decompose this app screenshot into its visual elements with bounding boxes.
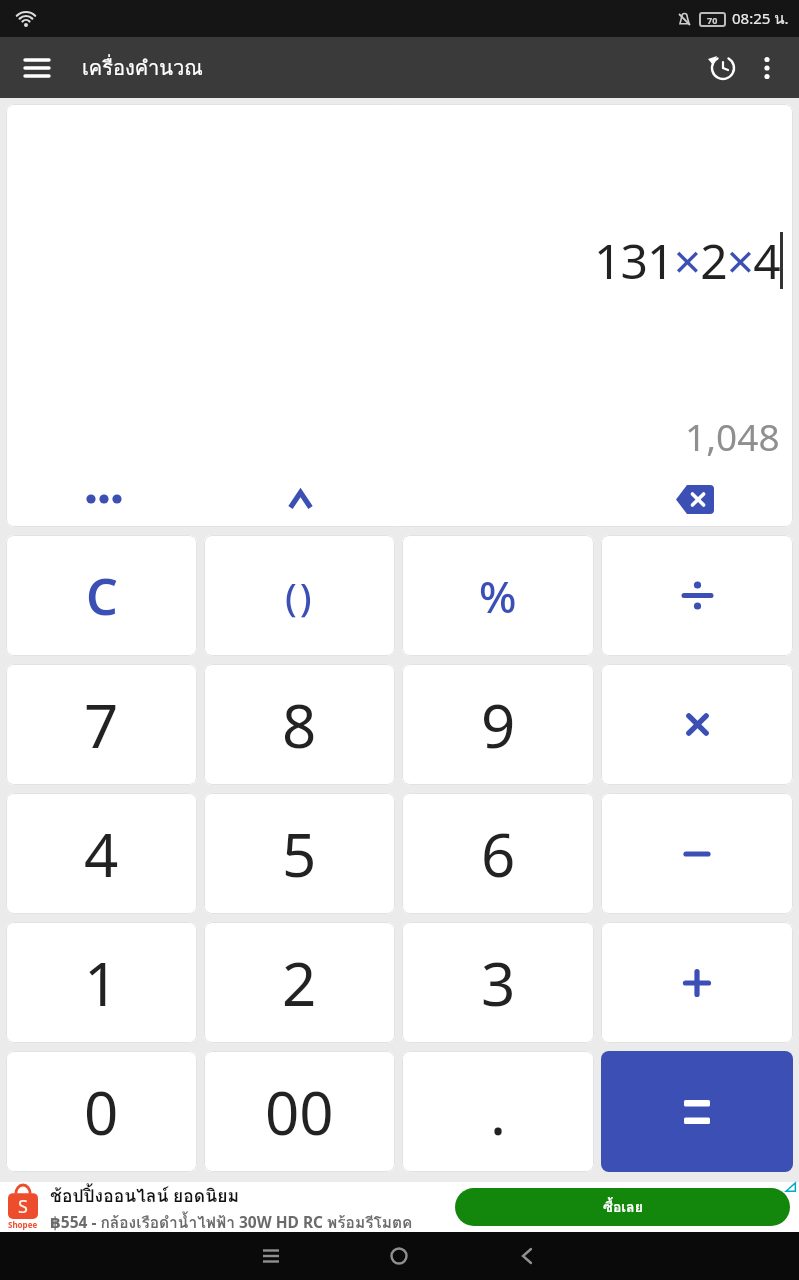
button[interactable]: () (204, 535, 395, 656)
button[interactable] (6, 479, 202, 519)
button[interactable]: S (0, 1182, 799, 1232)
staticText: 0 (84, 1071, 119, 1153)
staticText: 00 (265, 1071, 334, 1153)
button[interactable]: 6 (402, 793, 594, 914)
button[interactable] (381, 1238, 417, 1274)
button[interactable] (20, 51, 54, 85)
staticText: 5 (282, 813, 317, 895)
button[interactable]: 2 (204, 922, 395, 1043)
button[interactable] (596, 479, 793, 519)
staticText: เครื่องคำนวณ (82, 52, 203, 84)
button[interactable] (601, 922, 793, 1043)
button[interactable] (509, 1238, 545, 1274)
staticText: . (490, 1071, 507, 1153)
button[interactable] (749, 50, 785, 86)
staticText: 9 (481, 684, 516, 766)
button[interactable]: 1 (6, 922, 197, 1043)
staticText: 3 (481, 942, 516, 1024)
staticText: 08:25 น. (732, 7, 789, 31)
button[interactable] (601, 664, 793, 785)
staticText: 70 (707, 14, 718, 26)
staticText: ช้อปปิ้งออนไลน์ ยอดนิยม (50, 1182, 239, 1210)
button[interactable]: 7 (6, 664, 197, 785)
staticText: S (18, 1194, 28, 1219)
staticText: % (479, 566, 517, 626)
staticText: () (285, 570, 315, 622)
button[interactable]: 5 (204, 793, 395, 914)
button[interactable]: 3 (402, 922, 594, 1043)
staticText: 7 (84, 684, 119, 766)
staticText: ฿554 - กล้องเรือดำน้ำไฟฟ้า 30W HD RC พร้… (50, 1210, 413, 1232)
staticText: 1,048 (685, 411, 780, 461)
staticText: 1 (84, 942, 119, 1024)
button[interactable]: 4 (6, 793, 197, 914)
button[interactable]: ซื้อเลย (455, 1188, 790, 1226)
staticText: 131×2×4 (594, 228, 780, 293)
staticText: 8 (282, 684, 317, 766)
button[interactable]: % (402, 535, 594, 656)
button[interactable]: 0 (6, 1051, 197, 1172)
button[interactable]: 8 (204, 664, 395, 785)
staticText: C (86, 562, 118, 630)
button[interactable]: . (402, 1051, 594, 1172)
button[interactable] (601, 793, 793, 914)
button[interactable]: 00 (204, 1051, 395, 1172)
staticText: 4 (84, 813, 119, 895)
staticText: Shopee (8, 1219, 38, 1230)
button[interactable] (202, 479, 399, 519)
button[interactable] (601, 535, 793, 656)
staticText: ซื้อเลย (603, 1196, 643, 1218)
button[interactable] (703, 48, 743, 88)
staticText: 6 (481, 813, 516, 895)
button[interactable]: C (6, 535, 197, 656)
button[interactable]: 9 (402, 664, 594, 785)
button[interactable] (601, 1051, 793, 1172)
button[interactable] (253, 1238, 289, 1274)
staticText: 2 (282, 942, 317, 1024)
